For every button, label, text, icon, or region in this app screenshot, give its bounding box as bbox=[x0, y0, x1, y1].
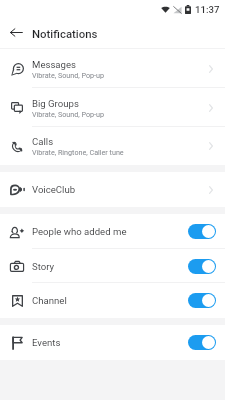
staticText: Vibrate, Ringtone, Caller tune bbox=[32, 148, 124, 156]
button[interactable]: VoiceClub bbox=[0, 172, 225, 207]
staticText: Events bbox=[32, 337, 188, 348]
staticText: Story bbox=[32, 261, 188, 272]
button[interactable]: Story bbox=[0, 249, 225, 283]
button[interactable]: Back bbox=[0, 18, 27, 49]
button[interactable]: Events bbox=[0, 325, 225, 360]
staticText: Channel bbox=[32, 295, 188, 306]
staticText: VoiceClub bbox=[32, 184, 203, 195]
button[interactable]: Channel bbox=[0, 283, 225, 318]
staticText: Calls bbox=[32, 136, 54, 147]
staticText: 11:37 bbox=[195, 4, 220, 15]
staticText: People who added me bbox=[32, 226, 188, 237]
staticText: Notifications bbox=[32, 27, 98, 40]
staticText: Messages bbox=[32, 59, 77, 70]
staticText: Big Groups bbox=[32, 98, 79, 109]
button[interactable]: Calls bbox=[0, 127, 225, 165]
staticText: Vibrate, Sound, Pop-up bbox=[32, 110, 105, 118]
staticText: Vibrate, Sound, Pop-up bbox=[32, 71, 105, 79]
button[interactable]: Big Groups bbox=[0, 88, 225, 127]
button[interactable]: People who added me bbox=[0, 214, 225, 249]
button[interactable]: Messages bbox=[0, 49, 225, 88]
